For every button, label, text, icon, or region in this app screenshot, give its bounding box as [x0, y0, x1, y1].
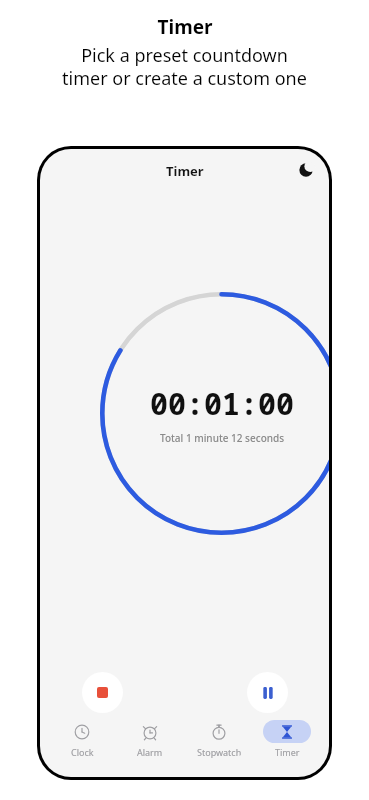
button[interactable]: Timer [261, 719, 313, 759]
staticText: Timer [166, 162, 204, 180]
button[interactable]: Pause [247, 672, 288, 713]
button[interactable]: Alarm [124, 719, 176, 759]
staticText: Alarm [137, 746, 163, 758]
button[interactable]: Stopwatch [193, 719, 245, 759]
staticText: Stopwatch [197, 746, 242, 758]
button[interactable]: Clock [56, 719, 108, 759]
staticText: Timer [157, 14, 213, 40]
staticText: 00:01:00 [150, 383, 294, 424]
staticText: Total 1 minute 12 seconds [160, 431, 285, 445]
staticText: Clock [71, 746, 94, 758]
button[interactable]: Stop [82, 672, 123, 713]
button[interactable]: Night mode [296, 160, 316, 180]
staticText: Timer [275, 746, 300, 758]
staticText: Pick a preset countdown timer or create … [62, 43, 307, 90]
